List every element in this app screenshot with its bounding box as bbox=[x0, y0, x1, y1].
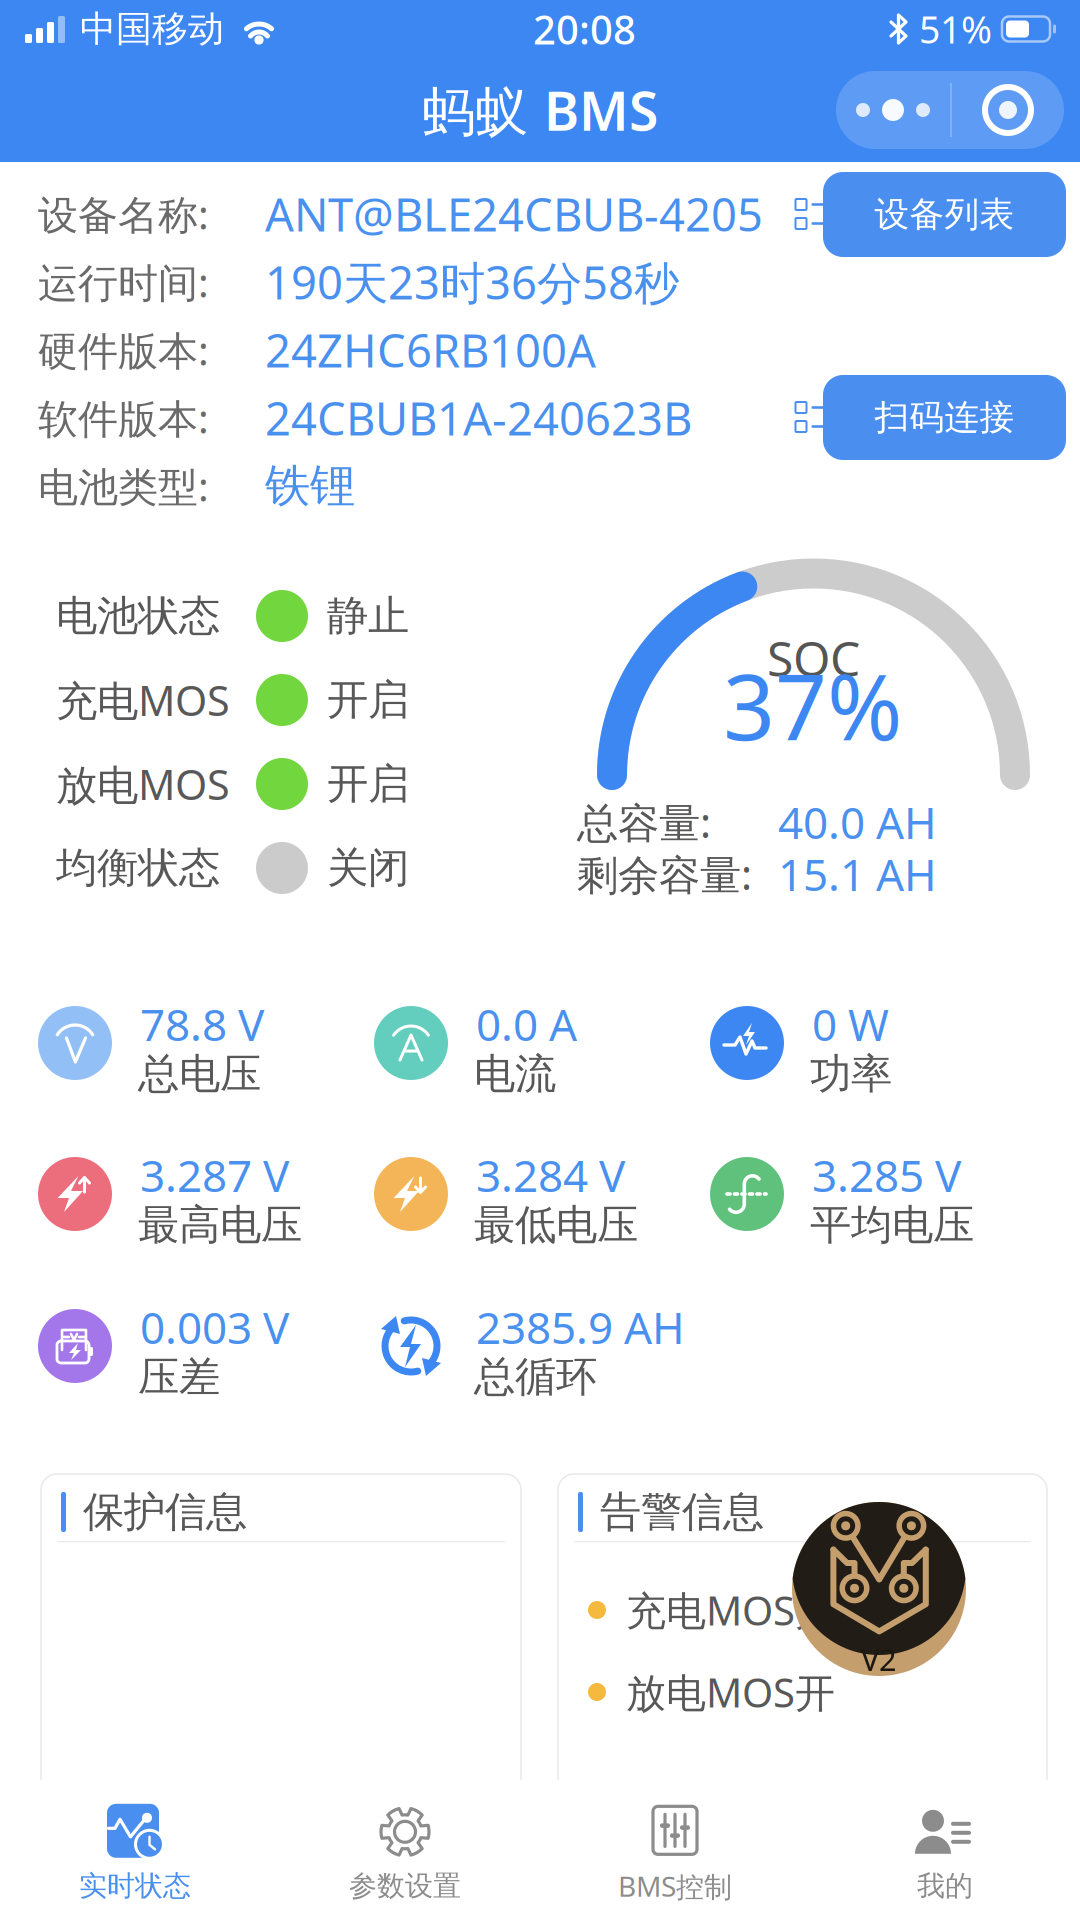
staticText: BMS控制 bbox=[618, 1867, 732, 1905]
staticText: 设备列表 bbox=[874, 193, 1014, 236]
staticText: 2385.9 AH bbox=[476, 1298, 685, 1356]
staticText: 告警信息 bbox=[600, 1487, 764, 1537]
staticText: 放电MOS bbox=[56, 757, 230, 811]
staticText: 功率 bbox=[810, 1049, 892, 1099]
button[interactable]: 实时状态 bbox=[0, 1790, 270, 1916]
staticText: 关闭 bbox=[327, 843, 409, 893]
staticText: 运行时间: bbox=[38, 255, 209, 308]
staticText: 硬件版本: bbox=[38, 323, 209, 376]
staticText: 中国移动 bbox=[80, 7, 224, 51]
staticText: 51% bbox=[919, 4, 992, 54]
staticText: 190天23时36分58秒 bbox=[265, 252, 679, 312]
staticText: ANT@BLE24CBUB-4205 bbox=[265, 184, 763, 244]
staticText: 我的 bbox=[917, 1869, 973, 1903]
staticText: 扫码连接 bbox=[874, 396, 1014, 439]
staticText: 24ZHC6RB100A bbox=[265, 320, 596, 380]
staticText: 充电MOS开 bbox=[626, 1583, 835, 1636]
staticText: 平均电压 bbox=[810, 1200, 974, 1250]
staticText: SOC bbox=[767, 626, 860, 690]
staticText: 总电压 bbox=[138, 1049, 261, 1099]
staticText: 软件版本: bbox=[38, 391, 209, 444]
staticText: 放电MOS开 bbox=[626, 1665, 835, 1718]
staticText: 总容量: bbox=[577, 795, 711, 849]
staticText: 开启 bbox=[327, 759, 409, 809]
staticText: 0.003 V bbox=[140, 1298, 289, 1356]
staticText: 3.284 V bbox=[476, 1146, 625, 1204]
staticText: 充电MOS bbox=[56, 673, 230, 727]
staticText: 压差 bbox=[138, 1352, 220, 1402]
staticText: 电池状态 bbox=[56, 591, 220, 641]
button[interactable]: 扫码连接 bbox=[823, 375, 1066, 460]
staticText: 均衡状态 bbox=[56, 843, 220, 893]
staticText: 20:08 bbox=[533, 2, 636, 55]
staticText: V2 bbox=[861, 1639, 897, 1679]
staticText: 电流 bbox=[474, 1049, 556, 1099]
staticText: 37% bbox=[723, 645, 902, 765]
staticText: 开启 bbox=[327, 675, 409, 725]
staticText: 24CBUB1A-240623B bbox=[265, 388, 692, 448]
staticText: 15.1 AH bbox=[778, 845, 937, 903]
staticText: 静止 bbox=[327, 591, 409, 641]
staticText: 0 W bbox=[812, 995, 889, 1053]
staticText: 实时状态 bbox=[79, 1869, 191, 1903]
button[interactable]: 我的 bbox=[810, 1790, 1080, 1916]
staticText: 40.0 AH bbox=[778, 793, 937, 851]
staticText: 保护信息 bbox=[83, 1487, 247, 1537]
staticText: 电池类型: bbox=[38, 459, 209, 512]
staticText: 剩余容量: bbox=[577, 847, 752, 901]
staticText: 0.0 A bbox=[476, 995, 577, 1053]
staticText: 最高电压 bbox=[138, 1200, 302, 1250]
button[interactable]: 参数设置 bbox=[270, 1790, 540, 1916]
staticText: 总循环 bbox=[474, 1352, 597, 1402]
staticText: 铁锂 bbox=[265, 458, 355, 514]
staticText: 设备名称: bbox=[38, 187, 209, 240]
staticText: 蚂蚁 BMS bbox=[422, 75, 658, 145]
staticText: 3.287 V bbox=[140, 1146, 289, 1204]
button[interactable]: 设备列表 bbox=[823, 172, 1066, 257]
button[interactable]: BMS控制 bbox=[540, 1790, 810, 1916]
staticText: 参数设置 bbox=[349, 1869, 461, 1903]
button[interactable]: 更多 bbox=[836, 71, 1064, 149]
staticText: 最低电压 bbox=[474, 1200, 638, 1250]
staticText: 78.8 V bbox=[140, 995, 264, 1053]
staticText: 3.285 V bbox=[812, 1146, 961, 1204]
